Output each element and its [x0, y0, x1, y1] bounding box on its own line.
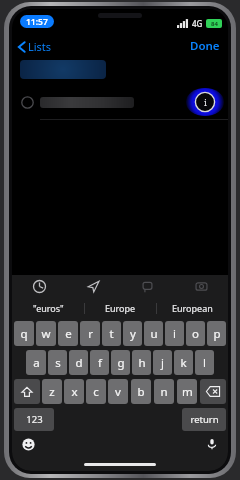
- staticText: i: [173, 326, 176, 342]
- button[interactable]: Details: [186, 86, 224, 118]
- staticText: w: [41, 326, 51, 342]
- staticText: k: [180, 355, 187, 371]
- staticText: g: [117, 355, 125, 371]
- button[interactable]: Scan: [174, 275, 228, 297]
- button[interactable]: w: [36, 321, 56, 346]
- button[interactable]: k: [174, 350, 193, 375]
- staticText: i: [204, 96, 207, 108]
- button[interactable]: Shift: [14, 379, 40, 404]
- button[interactable]: 123: [14, 408, 54, 431]
- staticText: x: [71, 384, 78, 400]
- button[interactable]: Europe: [84, 297, 156, 319]
- button[interactable]: f: [90, 350, 109, 375]
- button[interactable]: z: [42, 379, 62, 404]
- button[interactable]: s: [48, 350, 67, 375]
- staticText: return: [190, 413, 219, 426]
- button[interactable]: Emoji: [18, 434, 38, 454]
- button[interactable]: i: [165, 321, 184, 346]
- button[interactable]: v: [108, 379, 128, 404]
- button[interactable]: d: [69, 350, 88, 375]
- staticText: b: [137, 384, 145, 400]
- button[interactable]: return: [182, 408, 226, 431]
- staticText: j: [161, 355, 164, 371]
- button[interactable]: Lists: [12, 37, 58, 56]
- staticText: e: [65, 326, 72, 342]
- button[interactable]: h: [132, 350, 151, 375]
- button[interactable]: y: [123, 321, 142, 346]
- staticText: d: [75, 355, 83, 371]
- staticText: o: [192, 326, 199, 342]
- staticText: 11:57: [26, 16, 48, 28]
- button[interactable]: m: [177, 379, 197, 404]
- staticText: q: [20, 326, 28, 342]
- staticText: l: [203, 355, 206, 371]
- button[interactable]: Done: [182, 36, 228, 56]
- staticText: h: [138, 355, 146, 371]
- button[interactable]: c: [86, 379, 106, 404]
- button[interactable]: Recent: [12, 275, 66, 297]
- button[interactable]: Backspace: [200, 379, 226, 404]
- staticText: 123: [26, 413, 43, 426]
- staticText: r: [88, 326, 93, 342]
- staticText: Europe: [105, 302, 136, 314]
- staticText: f: [98, 355, 102, 371]
- staticText: m: [182, 384, 193, 400]
- button[interactable]: g: [111, 350, 130, 375]
- button[interactable]: p: [207, 321, 226, 346]
- staticText: Done: [190, 38, 220, 54]
- button[interactable]: n: [154, 379, 174, 404]
- staticText: u: [150, 326, 158, 342]
- staticText: a: [33, 355, 40, 371]
- button[interactable]: Flag: [120, 275, 174, 297]
- button[interactable]: r: [80, 321, 100, 346]
- button[interactable]: l: [195, 350, 214, 375]
- button[interactable]: x: [64, 379, 84, 404]
- button[interactable]: "euros": [12, 297, 84, 319]
- button[interactable]: e: [58, 321, 78, 346]
- staticText: t: [109, 326, 114, 342]
- button[interactable]: q: [14, 321, 34, 346]
- staticText: European: [172, 302, 213, 314]
- staticText: n: [160, 384, 168, 400]
- staticText: y: [130, 326, 136, 342]
- staticText: v: [115, 384, 121, 400]
- button[interactable]: a: [26, 350, 46, 375]
- staticText: 4G: [192, 18, 203, 29]
- button[interactable]: European: [156, 297, 228, 319]
- staticText: 84: [211, 20, 218, 28]
- button[interactable]: [12, 85, 228, 119]
- button[interactable]: o: [186, 321, 205, 346]
- button[interactable]: Location: [66, 275, 120, 297]
- staticText: c: [93, 384, 99, 400]
- staticText: p: [213, 326, 221, 342]
- staticText: z: [49, 384, 55, 400]
- staticText: "euros": [33, 302, 64, 314]
- staticText: s: [55, 355, 61, 371]
- button[interactable]: Dictate: [202, 434, 222, 454]
- button[interactable]: b: [131, 379, 151, 404]
- button[interactable]: u: [144, 321, 163, 346]
- staticText: Lists: [28, 39, 52, 54]
- button[interactable]: j: [153, 350, 172, 375]
- button[interactable]: t: [102, 321, 121, 346]
